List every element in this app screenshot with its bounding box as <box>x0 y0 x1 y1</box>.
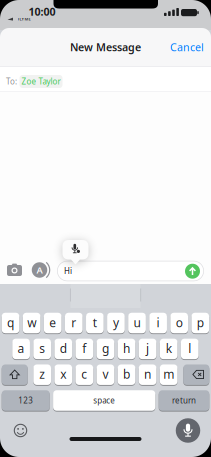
staticText: h <box>123 340 130 356</box>
button[interactable]: h <box>118 339 135 360</box>
button[interactable] <box>176 418 200 443</box>
staticText: l <box>188 340 191 356</box>
button[interactable] <box>57 261 204 281</box>
button[interactable]: d <box>54 339 72 360</box>
button[interactable]: m <box>160 364 177 386</box>
staticText: Cancel <box>170 40 204 54</box>
staticText: space <box>93 395 115 406</box>
staticText: y <box>113 314 119 330</box>
staticText: j <box>146 340 149 356</box>
button[interactable] <box>183 364 209 386</box>
staticText: i <box>157 314 160 330</box>
button[interactable] <box>2 364 28 386</box>
staticText: f <box>82 340 86 356</box>
staticText: z <box>39 366 45 382</box>
button[interactable]: a <box>12 339 30 360</box>
staticText: p <box>197 314 204 330</box>
button[interactable]: g <box>97 339 114 360</box>
button[interactable] <box>7 263 22 276</box>
button[interactable]: p <box>191 313 209 334</box>
staticText: v <box>102 366 108 382</box>
button[interactable]: e <box>44 313 62 334</box>
staticText: k <box>166 340 172 356</box>
staticText: e <box>49 314 56 330</box>
staticText: 123 <box>18 395 33 406</box>
button[interactable]: r <box>65 313 83 334</box>
button[interactable]: return <box>159 390 209 412</box>
button[interactable]: i <box>149 313 167 334</box>
staticText: A <box>36 264 42 276</box>
button[interactable]: y <box>107 313 125 334</box>
button[interactable]: c <box>75 364 93 386</box>
staticText: r <box>71 314 76 330</box>
button[interactable]: 123 <box>2 390 50 412</box>
button[interactable]: s <box>33 339 51 360</box>
button[interactable] <box>185 264 200 279</box>
staticText: c <box>81 366 87 382</box>
staticText: g <box>102 340 109 356</box>
staticText: b <box>123 366 130 382</box>
staticText: m <box>163 366 174 382</box>
button[interactable]: A <box>32 262 47 278</box>
button[interactable]: u <box>128 313 146 334</box>
button[interactable]: b <box>118 364 135 386</box>
button[interactable]: z <box>33 364 51 386</box>
staticText: n <box>144 366 151 382</box>
button[interactable]: t <box>86 313 104 334</box>
staticText: To: <box>6 76 17 87</box>
button[interactable]: o <box>170 313 188 334</box>
staticText: return <box>172 395 196 406</box>
staticText: New Message <box>70 40 141 54</box>
staticText: t <box>93 314 97 330</box>
button[interactable]: Zoe Taylor <box>19 75 62 88</box>
button[interactable]: l <box>181 339 199 360</box>
button[interactable]: k <box>160 339 177 360</box>
button[interactable]: space <box>53 390 155 412</box>
staticText: a <box>18 340 25 356</box>
button[interactable]: q <box>2 313 19 334</box>
staticText: Hi <box>64 266 72 276</box>
button[interactable]: v <box>97 364 114 386</box>
button[interactable]: w <box>23 313 40 334</box>
staticText: x <box>60 366 66 382</box>
button[interactable]: f <box>75 339 93 360</box>
staticText: q <box>7 314 14 330</box>
staticText: 10:00 <box>28 4 55 19</box>
button[interactable]: x <box>54 364 72 386</box>
button[interactable]: Cancel <box>167 39 207 55</box>
staticText: Zoe Taylor <box>21 76 60 87</box>
button[interactable]: n <box>139 364 156 386</box>
staticText: u <box>133 314 140 330</box>
button[interactable]: j <box>139 339 156 360</box>
button[interactable] <box>13 423 27 437</box>
staticText: w <box>27 314 36 330</box>
staticText: d <box>60 340 67 356</box>
staticText: o <box>176 314 183 330</box>
staticText: FLYME <box>17 16 30 22</box>
staticText: s <box>39 340 45 356</box>
